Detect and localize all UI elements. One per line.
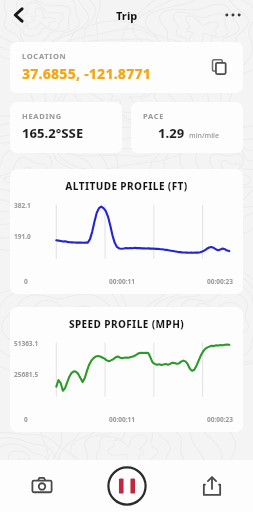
staticText: 25681.5: [14, 370, 39, 379]
button[interactable]: Copy coordinates: [205, 53, 233, 81]
staticText: 00:00:23: [164, 415, 233, 424]
staticText: Trip: [116, 8, 138, 23]
button[interactable]: Take photo: [21, 465, 63, 507]
staticText: 00:00:11: [80, 277, 164, 286]
button[interactable]: Pause recording: [104, 463, 150, 509]
staticText: ALTITUDE PROFILE (FT): [10, 179, 243, 193]
button[interactable]: LOCATION: [10, 42, 243, 93]
staticText: 382.1: [14, 201, 31, 210]
staticText: 00:00:11: [80, 415, 164, 424]
staticText: min/mile: [189, 131, 220, 141]
button[interactable]: ALTITUDE PROFILE (FT): [10, 169, 243, 294]
button[interactable]: PACE: [131, 102, 243, 153]
staticText: LOCATION: [22, 51, 67, 61]
staticText: 00:00:23: [164, 277, 233, 286]
staticText: 165.2°SSE: [22, 124, 84, 142]
staticText: 51363.1: [14, 339, 39, 348]
button[interactable]: More options: [219, 1, 247, 29]
button[interactable]: SPEED PROFILE (MPH): [10, 307, 243, 432]
button[interactable]: Back: [5, 1, 33, 29]
staticText: 37.6855, -121.8771: [22, 64, 152, 83]
staticText: HEADING: [22, 111, 62, 121]
staticText: 0: [24, 277, 80, 286]
staticText: 1.29: [158, 124, 185, 142]
staticText: PACE: [143, 111, 165, 121]
staticText: SPEED PROFILE (MPH): [10, 317, 243, 331]
staticText: 0: [24, 415, 80, 424]
button[interactable]: Share: [191, 465, 233, 507]
button[interactable]: HEADING: [10, 102, 122, 153]
staticText: 191.0: [14, 232, 31, 241]
